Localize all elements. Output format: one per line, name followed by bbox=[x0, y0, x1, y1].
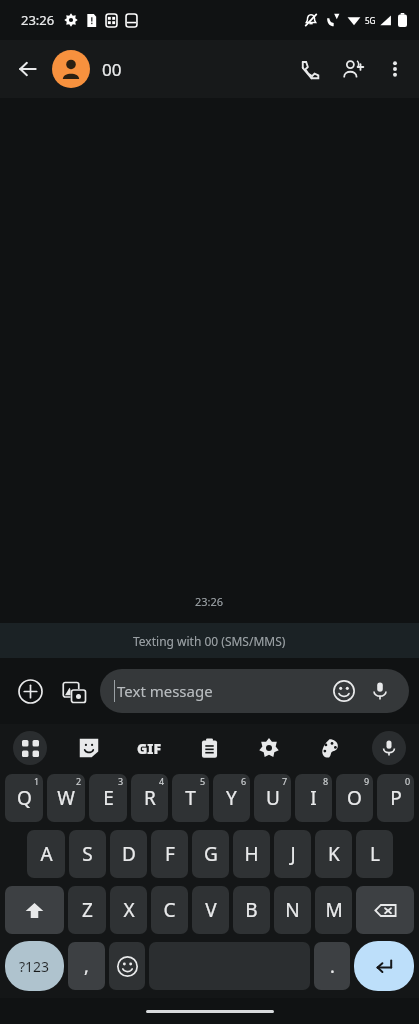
button[interactable]: Emoji keyboard bbox=[109, 942, 145, 990]
staticText: F bbox=[165, 841, 175, 867]
button[interactable]: V bbox=[192, 886, 229, 934]
button[interactable]: Back bbox=[6, 47, 50, 91]
button[interactable]: O bbox=[336, 774, 373, 822]
staticText: . bbox=[330, 954, 335, 979]
button[interactable]: R bbox=[131, 774, 168, 822]
button[interactable]: E bbox=[89, 774, 127, 822]
staticText: , bbox=[84, 954, 89, 979]
button[interactable]: Camera and gallery bbox=[54, 671, 94, 711]
button[interactable]: Themes bbox=[299, 724, 359, 772]
staticText: J bbox=[290, 841, 296, 867]
button[interactable]: N bbox=[274, 886, 311, 934]
button[interactable]: K bbox=[315, 830, 352, 878]
staticText: 23:26 bbox=[195, 594, 224, 609]
staticText: 23:26 bbox=[21, 11, 55, 29]
staticText: 3 bbox=[118, 775, 124, 787]
staticText: Text message bbox=[117, 681, 329, 701]
button[interactable]: Text message bbox=[100, 669, 409, 713]
button[interactable]: Comma bbox=[68, 942, 105, 990]
button[interactable]: Period bbox=[314, 942, 350, 990]
button[interactable]: Y bbox=[213, 774, 250, 822]
button[interactable]: H bbox=[233, 830, 270, 878]
button[interactable]: Call bbox=[287, 47, 331, 91]
staticText: 0 bbox=[405, 775, 411, 787]
staticText: I bbox=[310, 785, 317, 811]
button[interactable]: Keyboard apps bbox=[0, 724, 59, 772]
button[interactable]: X bbox=[110, 886, 147, 934]
button[interactable]: Enter bbox=[354, 941, 414, 991]
button[interactable]: Add person bbox=[331, 47, 375, 91]
staticText: Z bbox=[82, 897, 93, 923]
staticText: 7 bbox=[282, 775, 288, 787]
button[interactable]: J bbox=[274, 830, 311, 878]
button[interactable]: P bbox=[377, 774, 414, 822]
staticText: 9 bbox=[364, 775, 370, 787]
button[interactable]: Emoji bbox=[329, 676, 359, 706]
staticText: S bbox=[82, 841, 93, 867]
button[interactable]: M bbox=[315, 886, 352, 934]
button[interactable]: Attach bbox=[10, 671, 50, 711]
staticText: T bbox=[185, 785, 196, 811]
button[interactable]: C bbox=[151, 886, 188, 934]
staticText: B bbox=[245, 897, 258, 923]
button[interactable]: D bbox=[110, 830, 147, 878]
staticText: GIF bbox=[137, 739, 162, 758]
button[interactable]: L bbox=[356, 830, 393, 878]
staticText: P bbox=[390, 785, 402, 811]
staticText: N bbox=[285, 897, 300, 923]
staticText: Texting with 00 (SMS/MMS) bbox=[133, 633, 286, 649]
button[interactable]: W bbox=[47, 774, 85, 822]
staticText: 00 bbox=[102, 58, 122, 81]
staticText: M bbox=[325, 897, 343, 923]
button[interactable]: Settings bbox=[239, 724, 299, 772]
button[interactable]: Texting with 00 (SMS/MMS) bbox=[0, 623, 419, 658]
staticText: R bbox=[144, 785, 156, 811]
button[interactable]: Q bbox=[5, 774, 43, 822]
staticText: K bbox=[328, 841, 340, 867]
staticText: O bbox=[347, 785, 362, 811]
button[interactable]: B bbox=[233, 886, 270, 934]
staticText: W bbox=[57, 785, 75, 811]
staticText: ?123 bbox=[19, 957, 50, 976]
button[interactable]: Voice message bbox=[365, 676, 395, 706]
staticText: 2 bbox=[76, 775, 82, 787]
staticText: E bbox=[103, 785, 114, 811]
staticText: L bbox=[370, 841, 380, 867]
button[interactable]: S bbox=[69, 830, 106, 878]
button[interactable]: More options bbox=[375, 49, 415, 89]
staticText: Y bbox=[226, 785, 237, 811]
staticText: V bbox=[205, 897, 217, 923]
staticText: 5 bbox=[200, 775, 206, 787]
button[interactable]: F bbox=[151, 830, 188, 878]
staticText: 1 bbox=[34, 775, 40, 787]
staticText: C bbox=[163, 897, 176, 923]
staticText: X bbox=[123, 897, 135, 923]
button[interactable]: U bbox=[254, 774, 291, 822]
button[interactable]: A bbox=[27, 830, 65, 878]
button[interactable]: G bbox=[192, 830, 229, 878]
button[interactable]: Clipboard bbox=[179, 724, 239, 772]
staticText: 4 bbox=[159, 775, 165, 787]
button[interactable]: Backspace bbox=[356, 886, 414, 934]
button[interactable]: GIF bbox=[119, 724, 179, 772]
button[interactable]: ?123 bbox=[5, 941, 64, 991]
staticText: A bbox=[40, 841, 53, 867]
staticText: 5G bbox=[365, 15, 376, 26]
staticText: 8 bbox=[323, 775, 329, 787]
button[interactable]: I bbox=[295, 774, 332, 822]
button[interactable]: Voice input bbox=[359, 724, 419, 772]
staticText: G bbox=[204, 841, 218, 867]
button[interactable]: T bbox=[172, 774, 209, 822]
button[interactable]: Stickers bbox=[59, 724, 119, 772]
staticText: D bbox=[122, 841, 136, 867]
button[interactable]: 00 bbox=[52, 50, 122, 88]
staticText: U bbox=[266, 785, 280, 811]
button[interactable]: Z bbox=[68, 886, 106, 934]
staticText: H bbox=[244, 841, 259, 867]
button[interactable]: Shift bbox=[5, 886, 64, 934]
staticText: Q bbox=[17, 785, 32, 811]
staticText: 6 bbox=[241, 775, 247, 787]
